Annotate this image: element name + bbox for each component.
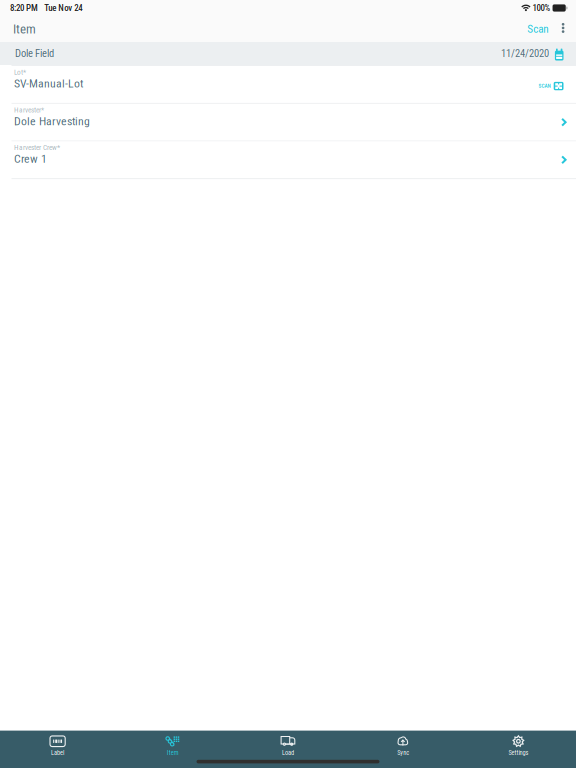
button[interactable]: Load [230, 733, 346, 759]
staticText: Dole Field [15, 47, 54, 60]
button[interactable]: Scan [521, 17, 554, 40]
staticText: Harvester* [14, 106, 44, 114]
staticText: 8:20 PM [10, 3, 38, 13]
staticText: SV-Manual-Lot [14, 76, 83, 90]
staticText: Item [13, 21, 36, 37]
staticText: Item [167, 749, 179, 757]
button[interactable]: Label [0, 733, 115, 759]
staticText: Settings [508, 749, 528, 757]
staticText: Label [51, 749, 64, 757]
button[interactable]: More options [555, 18, 571, 40]
staticText: Crew 1 [14, 152, 47, 166]
staticText: 100% [532, 3, 550, 13]
button[interactable]: Item [115, 733, 230, 759]
button[interactable]: Lot* [0, 66, 576, 103]
staticText: Lot* [14, 68, 26, 76]
button[interactable]: Sync [346, 733, 461, 759]
button[interactable]: Harvester* [0, 104, 576, 140]
button[interactable]: Harvester Crew* [0, 141, 576, 178]
staticText: Tue Nov 24 [44, 3, 82, 13]
staticText: Scan [527, 22, 548, 35]
staticText: Dole Harvesting [14, 114, 90, 128]
staticText: Load [282, 749, 294, 757]
button[interactable]: Settings [461, 733, 576, 759]
staticText: SCAN [538, 83, 550, 89]
staticText: 11/24/2020 [501, 47, 549, 60]
staticText: Harvester Crew* [14, 143, 60, 152]
staticText: Sync [397, 749, 409, 757]
button[interactable]: Dole Field [0, 42, 576, 65]
